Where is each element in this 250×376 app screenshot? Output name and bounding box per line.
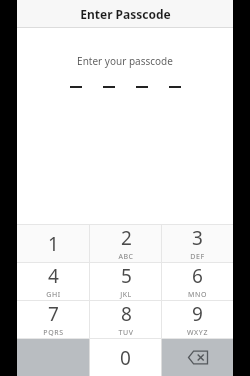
button[interactable]: 1 <box>17 225 89 262</box>
staticText: MNO <box>188 290 207 300</box>
button[interactable]: 0 <box>90 339 161 376</box>
staticText: 8 <box>121 301 132 327</box>
staticText: JKL <box>120 290 132 300</box>
staticText: DEF <box>190 252 205 262</box>
staticText: 2 <box>121 225 132 251</box>
staticText: 7 <box>48 301 59 327</box>
staticText: 1 <box>48 231 59 257</box>
staticText: 3 <box>192 225 203 251</box>
staticText: GHI <box>46 290 61 300</box>
button[interactable]: 9 <box>162 301 233 338</box>
button[interactable]: 3 <box>162 225 233 262</box>
button[interactable]: 8 <box>90 301 161 338</box>
staticText: WXYZ <box>187 328 208 338</box>
button[interactable]: 5 <box>90 263 161 300</box>
staticText: 4 <box>48 263 59 289</box>
button[interactable]: 7 <box>17 301 89 338</box>
button[interactable]: 6 <box>162 263 233 300</box>
staticText: PQRS <box>43 328 64 338</box>
staticText: ABC <box>118 252 134 262</box>
staticText: 0 <box>120 345 131 371</box>
staticText: TUV <box>118 328 134 338</box>
staticText: 6 <box>192 263 203 289</box>
staticText: Enter Passcode <box>80 6 171 22</box>
button[interactable]: Delete <box>162 339 233 376</box>
button[interactable]: 2 <box>90 225 161 262</box>
staticText: 9 <box>192 301 203 327</box>
staticText: 5 <box>121 263 132 289</box>
button[interactable]: 4 <box>17 263 89 300</box>
staticText: Enter your passcode <box>77 54 173 68</box>
